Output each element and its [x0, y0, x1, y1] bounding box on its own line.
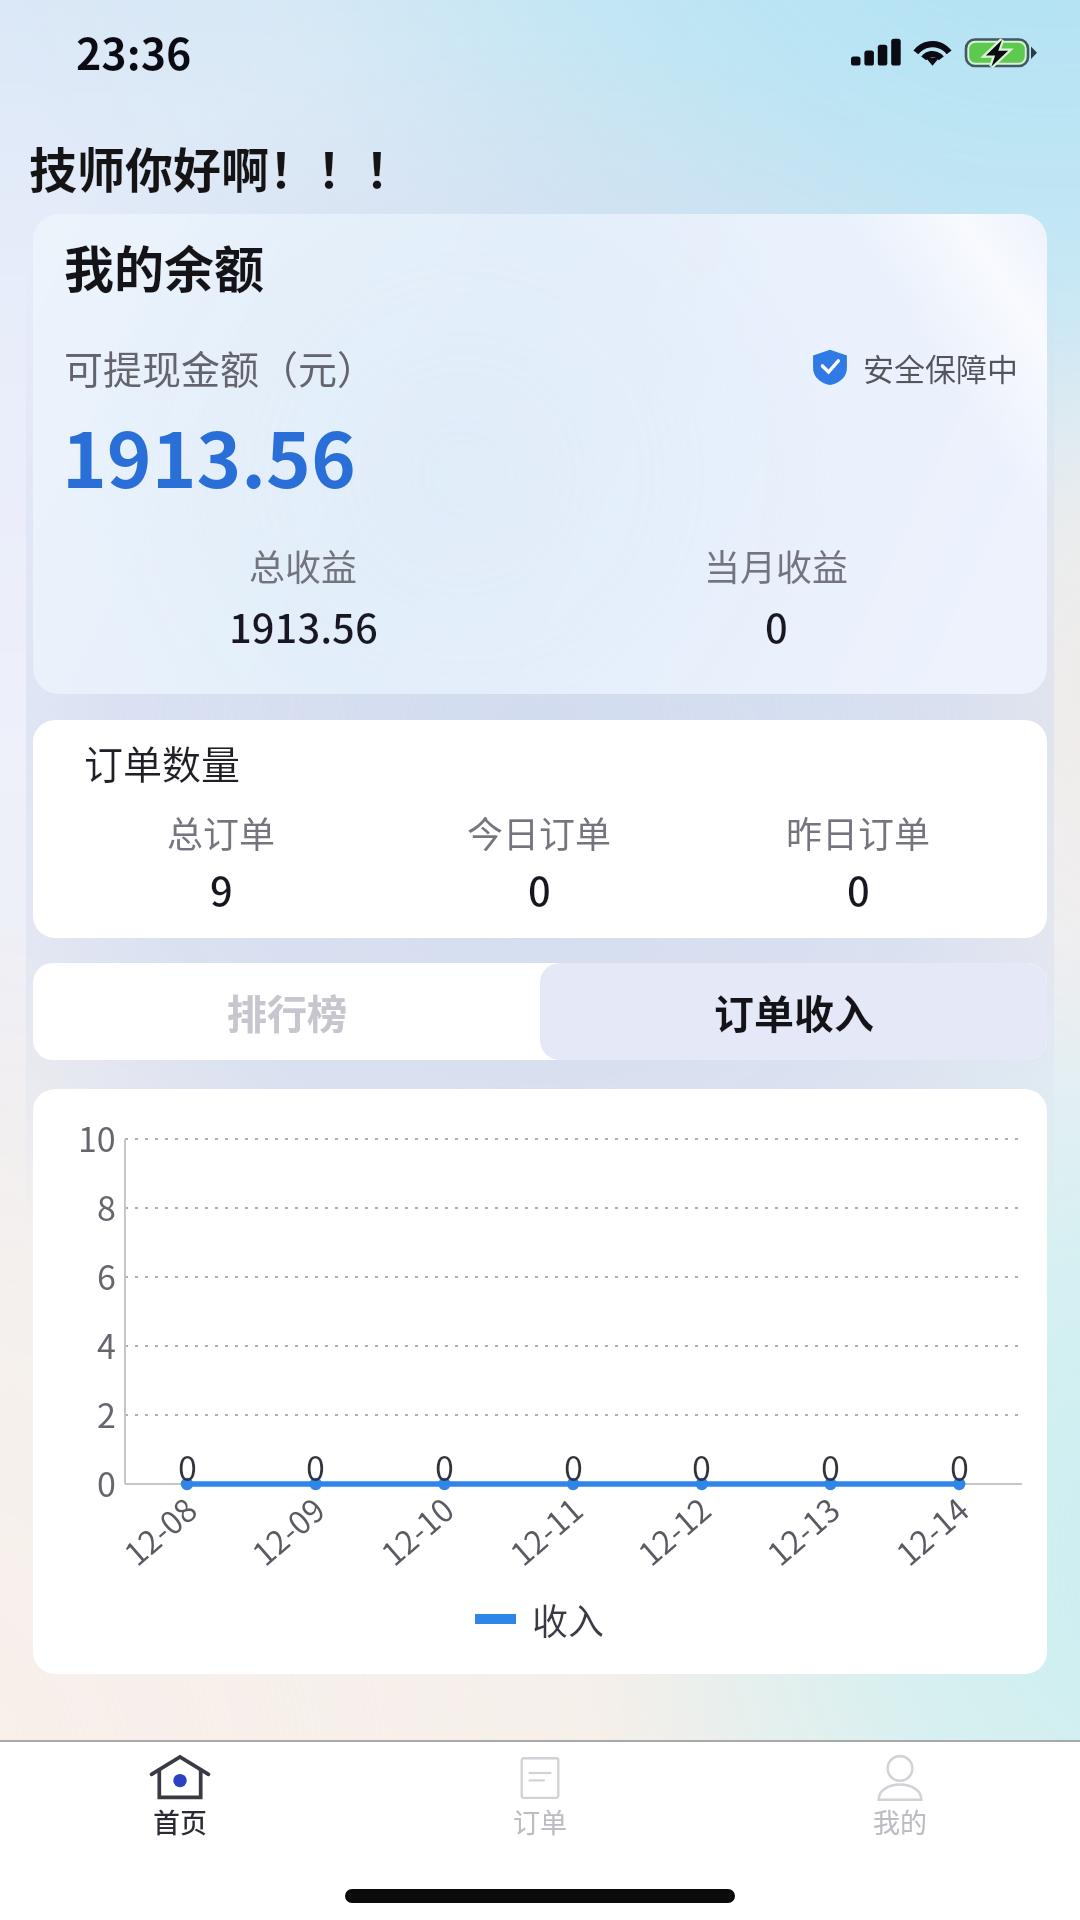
staticText: 0 — [306, 1442, 325, 1491]
staticText: 可提现金额（元） — [64, 339, 377, 395]
staticText: 0 — [435, 1442, 454, 1491]
staticText: 0 — [821, 1442, 840, 1491]
staticText: 昨日订单 — [786, 806, 931, 858]
staticText: 1913.56 — [229, 597, 378, 655]
staticText: 12-14 — [885, 1485, 978, 1575]
staticText: 我的 — [873, 1802, 927, 1841]
staticText: 0 — [765, 597, 788, 655]
staticText: 12-13 — [756, 1485, 849, 1575]
staticText: 技师你好啊！！！ — [29, 132, 414, 202]
button[interactable]: 总收益 — [67, 539, 540, 655]
staticText: 首页 — [153, 1802, 207, 1841]
button[interactable]: 当月收益 — [540, 539, 1013, 655]
button[interactable]: 我的余额 — [33, 214, 1047, 694]
staticText: 安全保障中 — [863, 345, 1018, 390]
staticText: 总订单 — [167, 806, 276, 858]
staticText: 0 — [692, 1442, 711, 1491]
button[interactable]: 昨日订单 — [699, 806, 1018, 918]
staticText: 0 — [564, 1442, 583, 1491]
staticText: 10 — [78, 1113, 116, 1162]
staticText: 12-10 — [370, 1485, 463, 1575]
staticText: 今日订单 — [467, 806, 612, 858]
staticText: 收入 — [532, 1593, 605, 1645]
staticText: 4 — [97, 1320, 116, 1369]
staticText: 2 — [97, 1389, 116, 1438]
button[interactable]: 订单数量 — [33, 720, 1047, 938]
staticText: 12-12 — [627, 1485, 720, 1575]
staticText: 6 — [97, 1251, 116, 1300]
button[interactable]: 我的 — [720, 1742, 1080, 1852]
other: Status icons — [851, 38, 1037, 68]
button[interactable]: 排行榜 — [33, 963, 540, 1060]
staticText: 当月收益 — [704, 539, 849, 591]
staticText: 总收益 — [249, 539, 358, 591]
button[interactable]: 订单 — [360, 1742, 720, 1852]
staticText: 23:36 — [76, 20, 192, 82]
staticText: 0 — [97, 1458, 116, 1507]
staticText: 0 — [528, 860, 551, 918]
button[interactable]: 订单收入 — [540, 963, 1047, 1060]
staticText: 订单收入 — [714, 983, 874, 1041]
staticText: 我的余额 — [64, 230, 264, 302]
staticText: 0 — [178, 1442, 197, 1491]
staticText: 排行榜 — [227, 983, 347, 1041]
staticText: 12-11 — [499, 1485, 592, 1575]
staticText: 12-08 — [113, 1485, 206, 1575]
staticText: 0 — [950, 1442, 969, 1491]
button[interactable]: 今日订单 — [380, 806, 699, 918]
button[interactable]: 总订单 — [62, 806, 380, 918]
staticText: 订单 — [513, 1802, 567, 1841]
staticText: 0 — [847, 860, 870, 918]
button[interactable]: 首页 — [0, 1742, 360, 1852]
staticText: 9 — [210, 860, 233, 918]
staticText: 8 — [97, 1182, 116, 1231]
staticText: 1913.56 — [62, 400, 356, 510]
staticText: 订单数量 — [84, 734, 241, 790]
staticText: 12-09 — [241, 1485, 334, 1575]
